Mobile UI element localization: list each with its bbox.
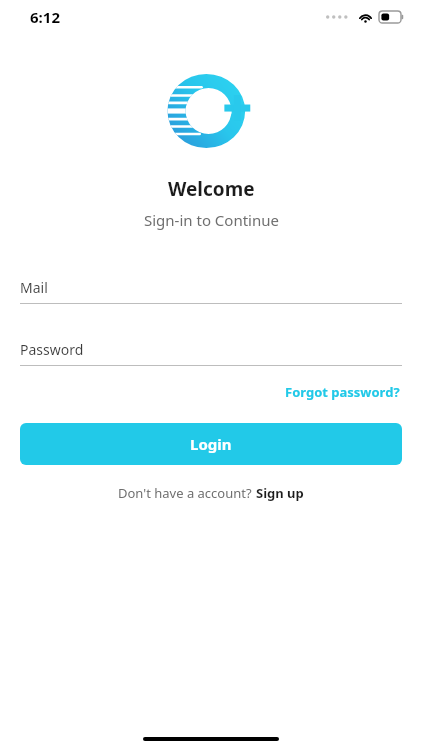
button[interactable]: Mail <box>20 278 402 304</box>
button[interactable]: Login <box>20 423 402 465</box>
staticText: Login <box>190 434 232 454</box>
staticText: Mail <box>20 278 48 297</box>
staticText: Sign up <box>256 484 304 502</box>
staticText: Password <box>20 340 84 359</box>
button[interactable]: Password <box>20 340 402 366</box>
staticText: 6:12 <box>30 7 60 27</box>
button[interactable]: Sign up <box>255 481 305 505</box>
button[interactable]: Forgot password? <box>283 380 402 404</box>
staticText: Forgot password? <box>285 383 400 401</box>
staticText: Don't have a account? <box>118 484 255 502</box>
other: App logo <box>164 74 258 148</box>
staticText: Sign-in to Continue <box>144 210 279 230</box>
staticText: Welcome <box>168 176 255 202</box>
